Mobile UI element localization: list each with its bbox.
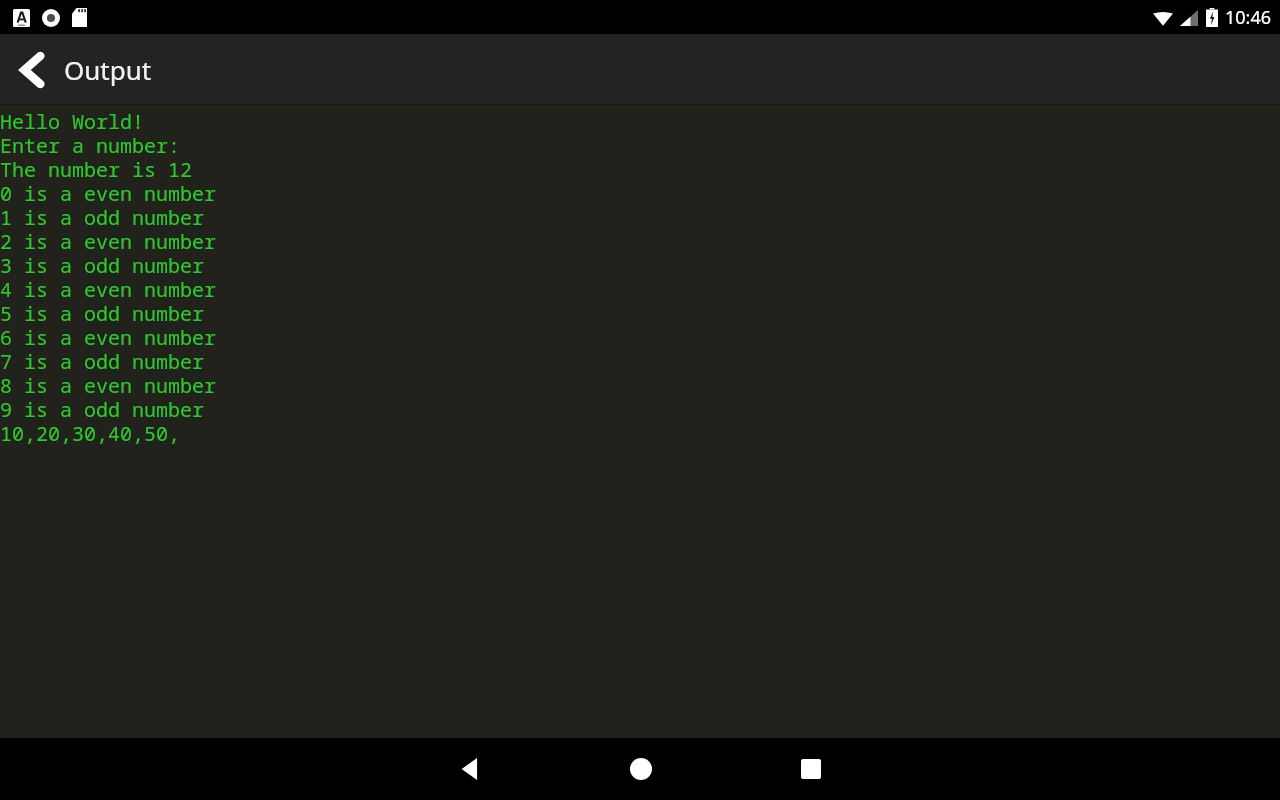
staticText: 9 is a odd number bbox=[0, 396, 204, 420]
staticText: 4 is a even number bbox=[0, 276, 216, 300]
staticText: 10:46 bbox=[1225, 5, 1272, 30]
staticText: 10,20,30,40,50, bbox=[0, 420, 180, 444]
staticText: Output bbox=[64, 52, 152, 87]
button[interactable]: Back bbox=[384, 738, 556, 800]
button[interactable]: Home bbox=[556, 738, 726, 800]
staticText: 1 is a odd number bbox=[0, 204, 204, 228]
staticText: 8 is a even number bbox=[0, 372, 216, 396]
staticText: Enter a number: bbox=[0, 132, 180, 156]
staticText: 5 is a odd number bbox=[0, 300, 204, 324]
staticText: 2 is a even number bbox=[0, 228, 216, 252]
staticText: 0 is a even number bbox=[0, 180, 216, 204]
staticText: The number is 12 bbox=[0, 156, 192, 180]
button[interactable]: Back bbox=[0, 34, 64, 105]
staticText: 3 is a odd number bbox=[0, 252, 204, 276]
staticText: Hello World! bbox=[0, 108, 144, 132]
staticText: 7 is a odd number bbox=[0, 348, 204, 372]
button[interactable]: Recent apps bbox=[726, 738, 896, 800]
staticText: 6 is a even number bbox=[0, 324, 216, 348]
